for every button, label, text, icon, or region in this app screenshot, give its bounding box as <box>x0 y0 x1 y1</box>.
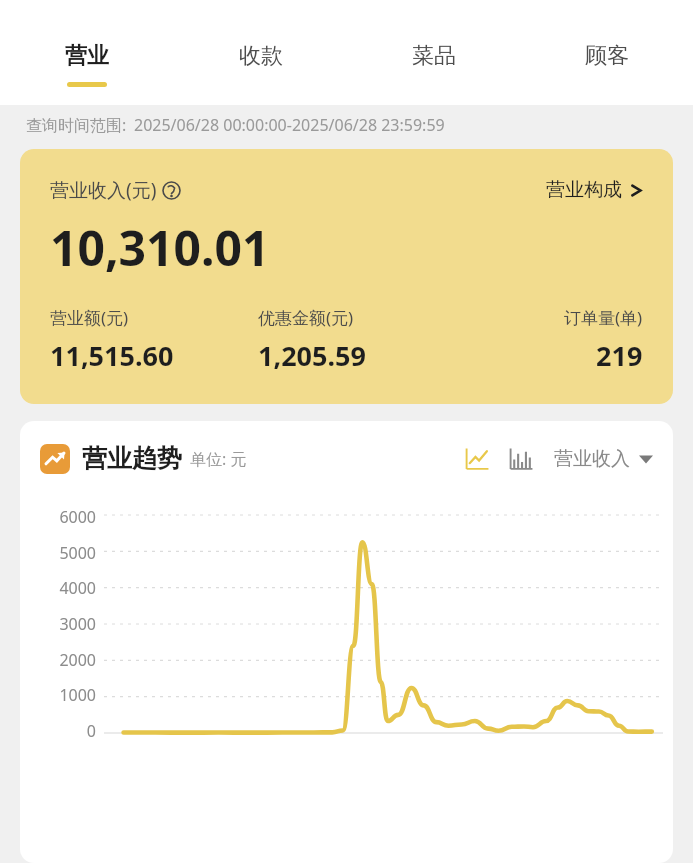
button[interactable]: 营业 <box>0 0 174 105</box>
button[interactable]: 折线图 <box>464 446 490 472</box>
staticText: 营业收入(元) <box>50 177 157 203</box>
button[interactable]: 收款 <box>174 0 347 105</box>
button[interactable]: 营业收入 <box>554 447 653 471</box>
staticText: 营业趋势 <box>82 443 182 474</box>
button[interactable]: 营业收入(元) <box>20 149 673 404</box>
staticText: 0 <box>86 720 96 742</box>
button[interactable]: 柱状图 <box>508 446 534 472</box>
staticText: 营业收入 <box>554 447 630 471</box>
staticText: 2000 <box>59 649 96 671</box>
staticText: 1000 <box>59 684 96 706</box>
staticText: 查询时间范围: <box>26 114 127 136</box>
other: 说明 <box>162 181 181 200</box>
staticText: 收款 <box>239 42 283 70</box>
staticText: 6000 <box>59 506 96 528</box>
staticText: 营业构成 <box>546 178 622 202</box>
staticText: 10,310.01 <box>50 215 270 280</box>
staticText: 4000 <box>59 577 96 599</box>
staticText: 顾客 <box>585 42 629 70</box>
staticText: 订单量(单) <box>564 306 643 329</box>
staticText: 5000 <box>59 542 96 564</box>
staticText: 菜品 <box>412 42 456 70</box>
button[interactable]: 顾客 <box>520 0 693 105</box>
staticText: 营业额(元) <box>50 306 129 329</box>
button[interactable]: 菜品 <box>347 0 520 105</box>
staticText: 3000 <box>59 613 96 635</box>
staticText: 优惠金额(元) <box>258 306 354 329</box>
staticText: 11,515.60 <box>50 337 174 374</box>
staticText: 单位: 元 <box>190 448 247 470</box>
staticText: 1,205.59 <box>258 337 366 374</box>
staticText: 219 <box>596 337 643 374</box>
button[interactable]: 营业构成 <box>546 178 643 202</box>
staticText: 2025/06/28 00:00:00-2025/06/28 23:59:59 <box>134 114 445 136</box>
staticText: 营业 <box>65 42 109 70</box>
